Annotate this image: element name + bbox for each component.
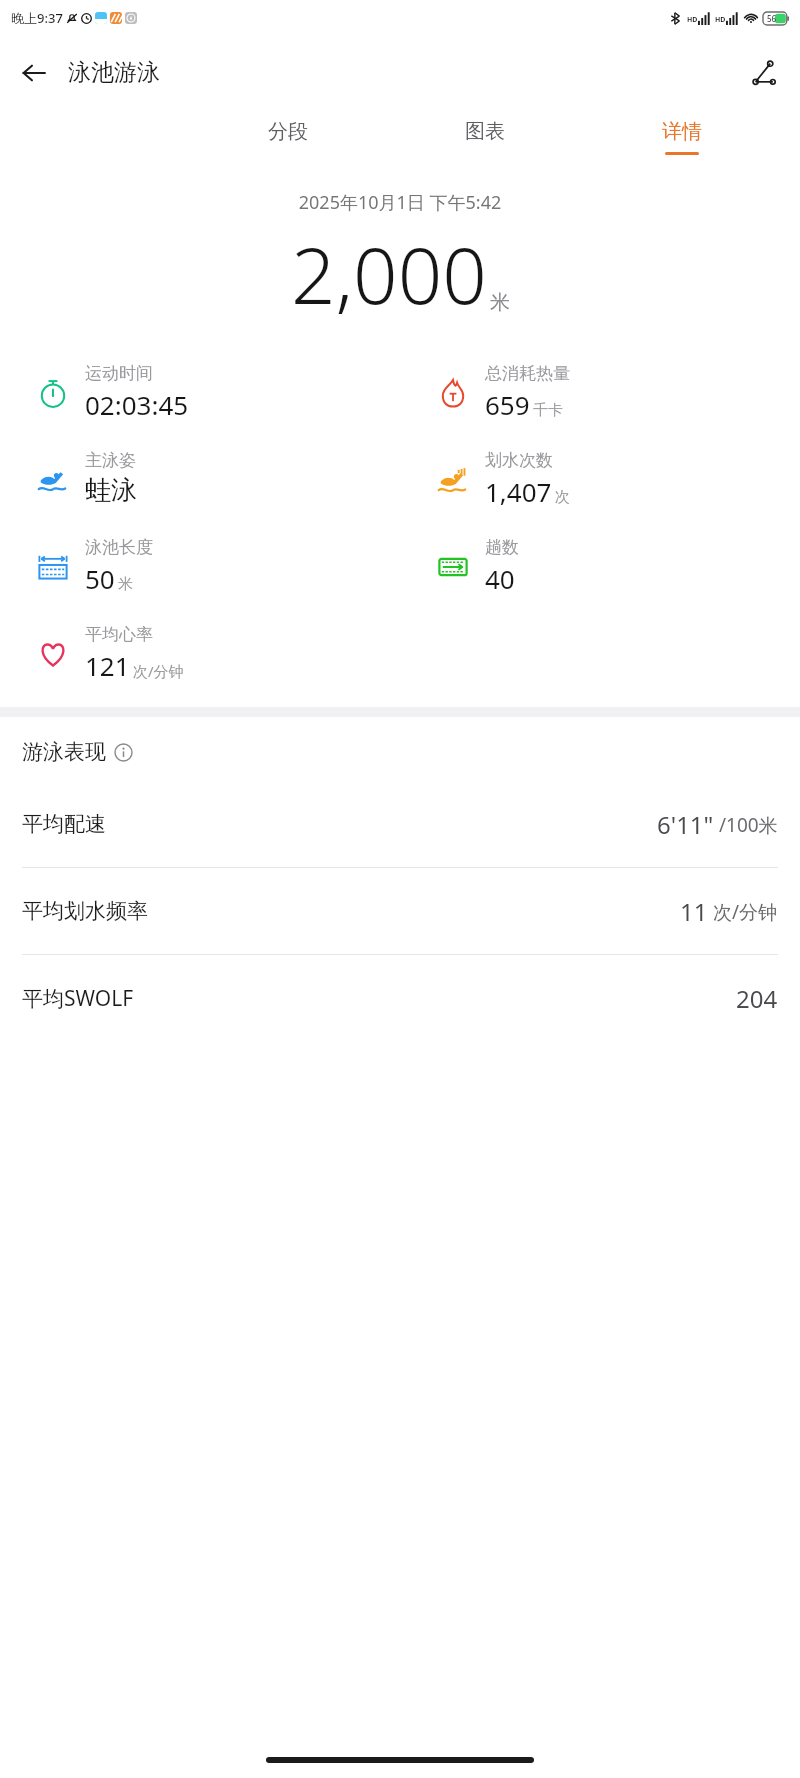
staticText: /100米 — [714, 812, 778, 838]
staticText: 泳池长度 — [85, 537, 153, 558]
staticText: 204 — [736, 982, 778, 1015]
button[interactable]: 趟数 — [400, 523, 800, 610]
staticText: 121 — [85, 648, 130, 683]
staticText: 56 — [767, 13, 777, 24]
staticText: 游泳表现 — [22, 739, 106, 765]
staticText: 主泳姿 — [85, 450, 136, 471]
staticText: 划水次数 — [485, 450, 553, 471]
staticText: 6'11" — [657, 808, 714, 841]
button[interactable]: 平均心率 — [0, 610, 400, 697]
staticText: 平均SWOLF — [22, 984, 134, 1013]
button[interactable]: 图表 — [386, 110, 583, 164]
staticText: 次/分钟 — [708, 899, 778, 925]
staticText: HD — [715, 15, 726, 25]
staticText: 02:03:45 — [85, 387, 189, 422]
staticText: 平均心率 — [85, 624, 153, 645]
button[interactable]: 主泳姿 — [0, 436, 400, 521]
staticText: 晚上9:37 — [11, 9, 63, 27]
staticText: 2025年10月1日 下午5:42 — [0, 190, 800, 215]
button[interactable]: 平均SWOLF — [0, 955, 800, 1041]
staticText: 趟数 — [485, 537, 519, 558]
button[interactable]: 平均划水频率 — [0, 868, 800, 955]
staticText: 2,000 — [291, 221, 487, 327]
staticText: 平均配速 — [22, 811, 106, 837]
staticText: 次 — [555, 488, 570, 507]
staticText: 图表 — [465, 119, 505, 144]
button[interactable]: 总消耗热量 — [400, 349, 800, 436]
button[interactable]: 返回 — [10, 49, 58, 97]
staticText: 泳池游泳 — [68, 58, 160, 87]
staticText: 总消耗热量 — [485, 363, 570, 384]
button[interactable]: 分享 — [740, 49, 788, 97]
staticText: HD — [687, 15, 698, 25]
staticText: 1,407 — [485, 474, 552, 509]
staticText: 米 — [118, 575, 133, 594]
staticText: 蛙泳 — [85, 474, 137, 507]
staticText: 详情 — [662, 119, 702, 144]
staticText: 11 — [680, 895, 708, 928]
button[interactable]: 分段 — [190, 110, 386, 164]
staticText: 40 — [485, 561, 515, 596]
button[interactable]: 游泳表现 — [0, 717, 800, 781]
staticText: 米 — [490, 290, 510, 315]
button[interactable]: 平均配速 — [0, 781, 800, 868]
button[interactable]: 详情 — [583, 110, 780, 164]
button[interactable]: 运动时间 — [0, 349, 400, 436]
staticText: 千卡 — [533, 401, 563, 420]
staticText: 次/分钟 — [133, 661, 184, 681]
staticText: 50 — [85, 561, 115, 596]
staticText: 659 — [485, 387, 530, 422]
staticText: 分段 — [268, 119, 308, 144]
staticText: 平均划水频率 — [22, 898, 148, 924]
button[interactable]: 泳池长度 — [0, 523, 400, 610]
button[interactable]: 划水次数 — [400, 436, 800, 523]
staticText: 运动时间 — [85, 363, 153, 384]
